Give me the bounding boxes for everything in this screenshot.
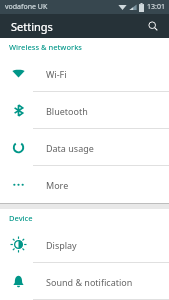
- button[interactable]: Display: [0, 226, 169, 263]
- staticText: Data usage: [46, 142, 94, 154]
- staticText: vodafone UK: [5, 2, 48, 12]
- staticText: Display: [46, 239, 77, 251]
- button[interactable]: Data usage: [0, 129, 169, 166]
- staticText: Wireless & networks: [9, 42, 82, 52]
- staticText: 13:01: [147, 2, 165, 12]
- staticText: Settings: [11, 19, 53, 34]
- staticText: Bluetooth: [46, 105, 88, 117]
- button[interactable]: Search: [143, 16, 163, 36]
- button[interactable]: More: [0, 166, 169, 203]
- staticText: Sound & notification: [46, 276, 133, 288]
- button[interactable]: Bluetooth: [0, 92, 169, 129]
- button[interactable]: Wi-Fi: [0, 55, 169, 92]
- staticText: Wi-Fi: [46, 68, 67, 80]
- staticText: More: [46, 179, 69, 191]
- button[interactable]: Sound & notification: [0, 263, 169, 300]
- staticText: Device: [9, 213, 33, 223]
